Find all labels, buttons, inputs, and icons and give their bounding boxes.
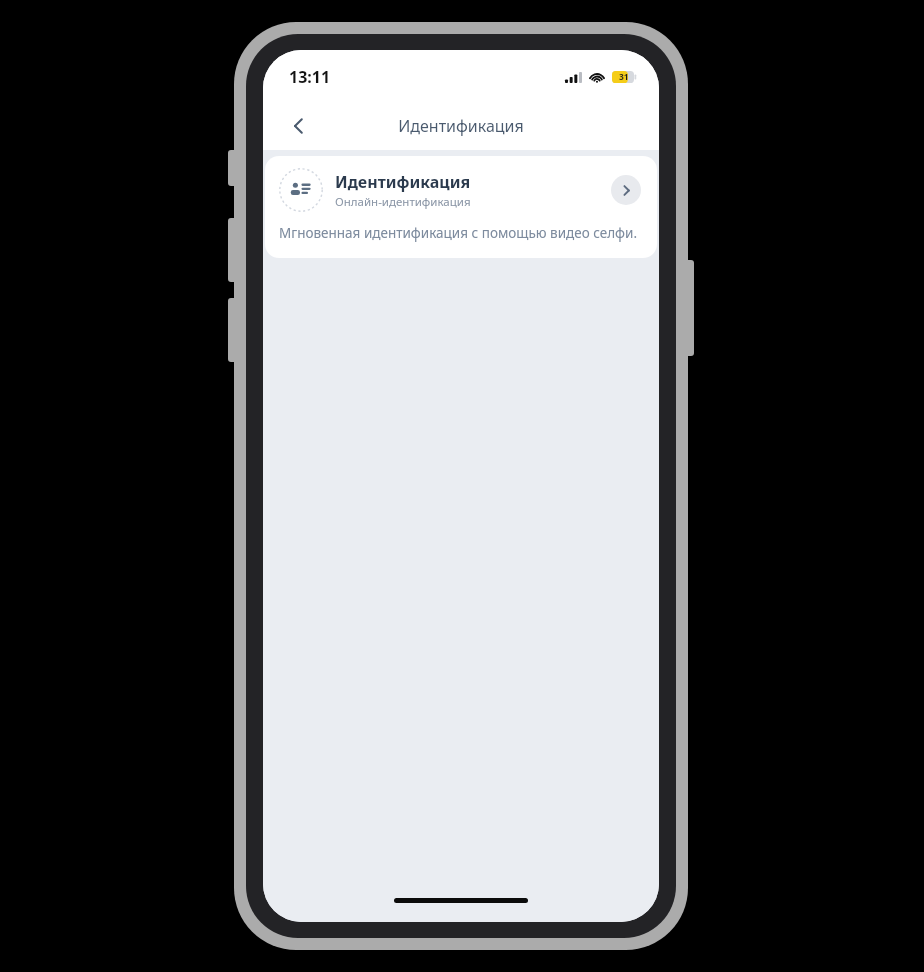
staticText: Мгновенная идентификация с помощью видео… [279, 224, 638, 242]
staticText: Идентификация [335, 171, 471, 193]
staticText: Идентификация [398, 115, 524, 137]
staticText: Онлайн-идентификация [335, 194, 471, 210]
button[interactable]: Open identification [611, 175, 641, 205]
button[interactable]: Back [277, 104, 321, 148]
button[interactable]: Идентификация [265, 156, 657, 222]
staticText: 31 [619, 71, 629, 83]
staticText: 13:11 [289, 66, 331, 88]
